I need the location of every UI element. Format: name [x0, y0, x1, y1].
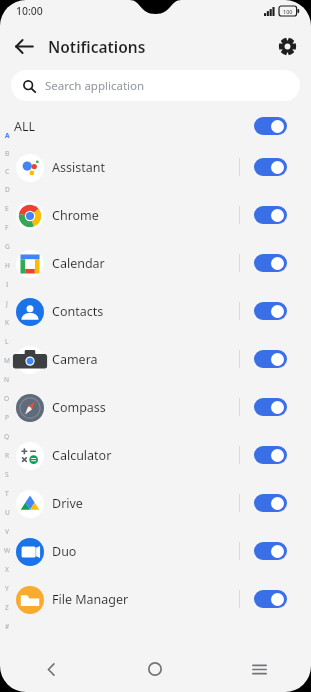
staticText: Drive — [52, 495, 83, 512]
button[interactable]: Search application — [11, 70, 300, 101]
button[interactable]: N — [0, 370, 14, 389]
button[interactable]: T — [0, 484, 14, 503]
staticText: File Manager — [52, 591, 129, 608]
button[interactable]: O — [0, 389, 14, 408]
button[interactable]: G — [0, 237, 14, 256]
button[interactable]: Toggle notifications — [254, 350, 287, 368]
staticText: Y — [5, 584, 9, 593]
button[interactable]: Drive — [0, 479, 311, 527]
button[interactable]: Toggle notifications — [254, 158, 287, 176]
button[interactable]: J — [0, 294, 14, 313]
button[interactable]: Assistant — [0, 143, 311, 191]
staticText: Calculator — [52, 447, 112, 464]
button[interactable]: Recent apps — [207, 646, 311, 692]
button[interactable]: H — [0, 256, 14, 275]
button[interactable]: File Manager — [0, 575, 311, 623]
button[interactable]: Contacts — [0, 287, 311, 335]
button[interactable]: W — [0, 541, 14, 560]
button[interactable]: P — [0, 408, 14, 427]
button[interactable]: E — [0, 199, 14, 218]
staticText: Z — [5, 603, 9, 612]
button[interactable]: ALL — [0, 109, 311, 143]
button[interactable]: F — [0, 218, 14, 237]
button[interactable]: Toggle notifications — [254, 254, 287, 272]
button[interactable]: L — [0, 332, 14, 351]
staticText: C — [5, 167, 10, 176]
staticText: Compass — [52, 399, 106, 416]
staticText: Calendar — [52, 255, 105, 272]
button[interactable]: Back — [6, 28, 42, 64]
button[interactable]: K — [0, 313, 14, 332]
button[interactable]: B — [0, 144, 14, 162]
staticText: Notifications — [48, 36, 146, 57]
button[interactable]: Q — [0, 427, 14, 446]
button[interactable]: Back — [0, 646, 103, 692]
button[interactable]: Toggle notifications — [254, 542, 287, 560]
button[interactable]: Toggle notifications — [254, 206, 287, 224]
button[interactable]: X — [0, 560, 14, 579]
staticText: H — [5, 261, 10, 270]
staticText: Assistant — [52, 159, 105, 176]
staticText: G — [5, 242, 10, 251]
staticText: X — [5, 565, 9, 574]
button[interactable]: Home — [103, 646, 207, 692]
staticText: U — [5, 508, 10, 517]
button[interactable]: Chrome — [0, 191, 311, 239]
button[interactable]: Z — [0, 598, 14, 617]
button[interactable]: Y — [0, 579, 14, 598]
staticText: M — [4, 356, 10, 365]
button[interactable]: # — [0, 617, 14, 636]
staticText: D — [5, 185, 10, 194]
button[interactable]: Camera — [0, 335, 311, 383]
staticText: N — [4, 375, 10, 384]
button[interactable]: S — [0, 465, 14, 484]
button[interactable]: Toggle notifications — [254, 494, 287, 512]
staticText: V — [5, 527, 9, 536]
staticText: Camera — [52, 351, 98, 368]
button[interactable]: U — [0, 503, 14, 522]
staticText: Duo — [52, 543, 77, 560]
button[interactable]: Toggle notifications — [254, 117, 287, 135]
staticText: J — [6, 299, 8, 308]
button[interactable]: V — [0, 522, 14, 541]
staticText: O — [4, 394, 10, 403]
staticText: Search application — [45, 78, 145, 94]
staticText: T — [5, 489, 9, 498]
staticText: R — [5, 451, 10, 460]
staticText: ALL — [14, 118, 36, 135]
button[interactable]: R — [0, 446, 14, 465]
staticText: E — [5, 204, 9, 213]
staticText: # — [5, 622, 10, 631]
button[interactable]: Settings — [269, 28, 305, 64]
button[interactable]: Toggle notifications — [254, 446, 287, 464]
staticText: K — [5, 318, 10, 327]
button[interactable]: Compass — [0, 383, 311, 431]
staticText: B — [5, 149, 10, 158]
button[interactable]: Duo — [0, 527, 311, 575]
button[interactable]: A — [0, 126, 14, 144]
staticText: L — [5, 337, 9, 346]
staticText: 10:00 — [16, 4, 43, 18]
staticText: W — [4, 546, 11, 555]
button[interactable]: Toggle notifications — [254, 398, 287, 416]
staticText: Chrome — [52, 207, 99, 224]
button[interactable]: I — [0, 275, 14, 294]
staticText: A — [5, 131, 10, 140]
button[interactable]: Calculator — [0, 431, 311, 479]
staticText: I — [6, 280, 9, 289]
staticText: S — [5, 470, 9, 479]
staticText: Q — [4, 432, 10, 441]
button[interactable]: Toggle notifications — [254, 590, 287, 608]
staticText: 100 — [283, 8, 293, 15]
button[interactable]: C — [0, 162, 14, 180]
button[interactable]: D — [0, 180, 14, 199]
button[interactable]: M — [0, 351, 14, 370]
button[interactable]: Calendar — [0, 239, 311, 287]
staticText: Contacts — [52, 303, 104, 320]
button[interactable]: Toggle notifications — [254, 302, 287, 320]
staticText: F — [5, 223, 9, 232]
staticText: P — [5, 413, 9, 422]
